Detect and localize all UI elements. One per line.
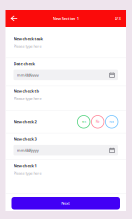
staticText: Next [61,201,70,206]
button[interactable]: N/A [105,115,118,128]
staticText: New Section 1 [53,16,79,21]
staticText: Date check [13,61,34,66]
staticText: 2/3 [114,16,120,21]
staticText: New check 2 [13,119,36,124]
staticText: New check 1 [13,163,36,168]
staticText: mm/dd/yyyy [17,72,39,77]
staticText: mm/dd/yyyy [17,147,39,153]
button[interactable]: Back [5,10,22,27]
staticText: Please type here [13,43,41,49]
staticText: Yes [82,120,86,123]
staticText: Please type here [13,96,41,101]
staticText: New check 3 [13,136,36,142]
button[interactable]: Next [11,197,120,209]
button[interactable]: Yes [77,115,90,128]
button[interactable]: No [91,115,104,128]
staticText: New check task [13,36,42,41]
staticText: Please type here [13,170,41,176]
staticText: No [96,120,100,123]
staticText: N/A [109,120,114,123]
staticText: New check tb [13,88,39,93]
button[interactable]: mm/dd/yyyy [13,70,118,80]
button[interactable]: mm/dd/yyyy [13,145,118,155]
